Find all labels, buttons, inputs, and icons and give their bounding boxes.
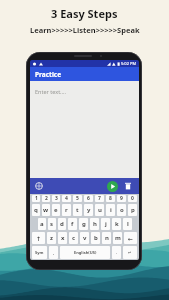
staticText: v bbox=[83, 234, 87, 242]
staticText: , bbox=[53, 250, 55, 255]
button[interactable]: Practice bbox=[30, 67, 139, 81]
staticText: x bbox=[61, 234, 65, 242]
staticText: j bbox=[105, 220, 107, 228]
button[interactable]: s bbox=[48, 218, 56, 230]
button[interactable]: 2 bbox=[42, 195, 50, 202]
button[interactable]: o bbox=[117, 204, 126, 216]
button[interactable]: 5 bbox=[73, 195, 82, 202]
button[interactable]: e bbox=[52, 204, 60, 216]
button[interactable]: 0 bbox=[128, 195, 137, 202]
staticText: 1 bbox=[35, 195, 38, 202]
staticText: a bbox=[40, 220, 44, 228]
button[interactable]: ↑ bbox=[32, 232, 45, 244]
button[interactable]: ↵ bbox=[123, 246, 137, 259]
button[interactable]: 1 bbox=[32, 195, 40, 202]
button[interactable]: y bbox=[84, 204, 93, 216]
button[interactable]: ← bbox=[124, 232, 137, 244]
button[interactable]: x bbox=[58, 232, 67, 244]
staticText: ↵ bbox=[128, 250, 132, 255]
staticText: 8 bbox=[109, 195, 112, 202]
button[interactable]: t bbox=[73, 204, 82, 216]
staticText: h bbox=[93, 220, 97, 228]
button[interactable]: m bbox=[113, 232, 122, 244]
staticText: Sym bbox=[35, 250, 44, 255]
staticText: 3 bbox=[55, 195, 58, 202]
staticText: ← bbox=[128, 235, 134, 242]
button[interactable]: j bbox=[101, 218, 110, 230]
button[interactable]: n bbox=[102, 232, 111, 244]
staticText: 6 bbox=[87, 195, 90, 202]
button[interactable] bbox=[124, 182, 132, 190]
button[interactable]: p bbox=[128, 204, 137, 216]
staticText: 9 bbox=[120, 195, 123, 202]
button[interactable]: z bbox=[47, 232, 56, 244]
staticText: s bbox=[50, 220, 54, 228]
staticText: l bbox=[127, 220, 129, 228]
staticText: y bbox=[87, 206, 91, 214]
staticText: d bbox=[60, 220, 64, 228]
button[interactable] bbox=[107, 181, 118, 192]
button[interactable]: 4 bbox=[62, 195, 71, 202]
button[interactable]: g bbox=[79, 218, 88, 230]
staticText: . bbox=[116, 250, 118, 255]
button[interactable]: c bbox=[69, 232, 78, 244]
button[interactable]: b bbox=[91, 232, 100, 244]
staticText: o bbox=[120, 206, 124, 214]
staticText: z bbox=[50, 234, 53, 242]
staticText: 3 Easy Steps bbox=[51, 6, 118, 21]
staticText: 0 bbox=[131, 195, 134, 202]
staticText: Enter text.... bbox=[35, 88, 67, 95]
staticText: i bbox=[110, 206, 112, 214]
staticText: u bbox=[98, 206, 102, 214]
staticText: Practice bbox=[35, 70, 62, 79]
button[interactable]: English(US) bbox=[60, 246, 110, 259]
button[interactable]: 3 bbox=[52, 195, 60, 202]
staticText: p bbox=[131, 206, 135, 214]
staticText: k bbox=[115, 220, 119, 228]
staticText: e bbox=[54, 206, 58, 214]
staticText: 4 bbox=[65, 195, 68, 202]
button[interactable]: h bbox=[90, 218, 99, 230]
button[interactable]: i bbox=[106, 204, 115, 216]
staticText: t bbox=[76, 206, 79, 214]
staticText: English(US) bbox=[74, 250, 97, 255]
button[interactable]: 6 bbox=[84, 195, 93, 202]
button[interactable]: d bbox=[58, 218, 66, 230]
staticText: q bbox=[34, 206, 38, 214]
staticText: 5:02 PM bbox=[121, 61, 137, 66]
button[interactable] bbox=[35, 182, 43, 190]
staticText: 5 bbox=[76, 195, 79, 202]
button[interactable]: 9 bbox=[117, 195, 126, 202]
staticText: b bbox=[94, 234, 98, 242]
button[interactable]: 7 bbox=[95, 195, 104, 202]
button[interactable]: . bbox=[112, 246, 121, 259]
button[interactable]: q bbox=[32, 204, 40, 216]
button[interactable]: Sym bbox=[32, 246, 47, 259]
button[interactable]: f bbox=[68, 218, 77, 230]
button[interactable]: a bbox=[38, 218, 46, 230]
staticText: 2 bbox=[45, 195, 48, 202]
button[interactable]: k bbox=[112, 218, 121, 230]
staticText: c bbox=[72, 234, 76, 242]
button[interactable]: l bbox=[123, 218, 132, 230]
staticText: f bbox=[71, 220, 74, 228]
staticText: Learn>>>>>Listen>>>>>Speak bbox=[30, 25, 140, 35]
button[interactable]: , bbox=[49, 246, 58, 259]
button[interactable]: w bbox=[42, 204, 50, 216]
staticText: ↑ bbox=[36, 235, 42, 242]
button[interactable]: v bbox=[80, 232, 89, 244]
button[interactable]: u bbox=[95, 204, 104, 216]
staticText: n bbox=[105, 234, 109, 242]
staticText: w bbox=[43, 206, 49, 214]
staticText: g bbox=[82, 220, 86, 228]
staticText: r bbox=[65, 206, 68, 214]
staticText: 7 bbox=[98, 195, 101, 202]
button[interactable]: r bbox=[62, 204, 71, 216]
button[interactable]: 8 bbox=[106, 195, 115, 202]
staticText: m bbox=[115, 234, 121, 242]
